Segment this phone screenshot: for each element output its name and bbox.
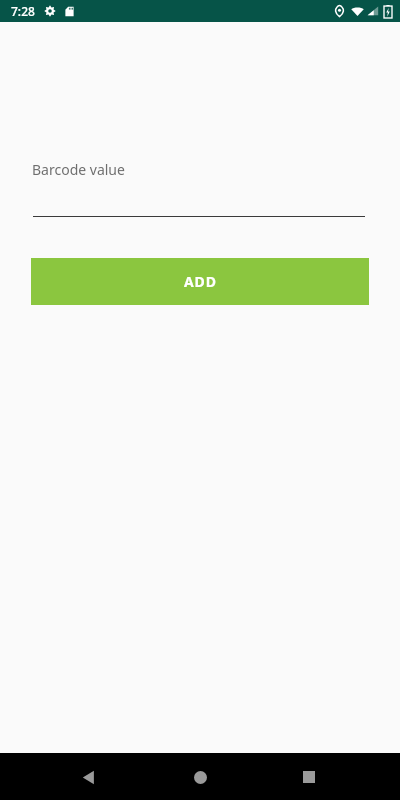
button[interactable] — [33, 199, 365, 217]
staticText: ADD — [184, 272, 217, 291]
button[interactable]: Back — [72, 761, 104, 793]
staticText: Barcode value — [32, 160, 125, 179]
button[interactable]: Recent apps — [293, 761, 325, 793]
button[interactable]: ADD — [31, 258, 369, 305]
button[interactable]: Home — [184, 761, 216, 793]
staticText: 7:28 — [11, 3, 35, 19]
